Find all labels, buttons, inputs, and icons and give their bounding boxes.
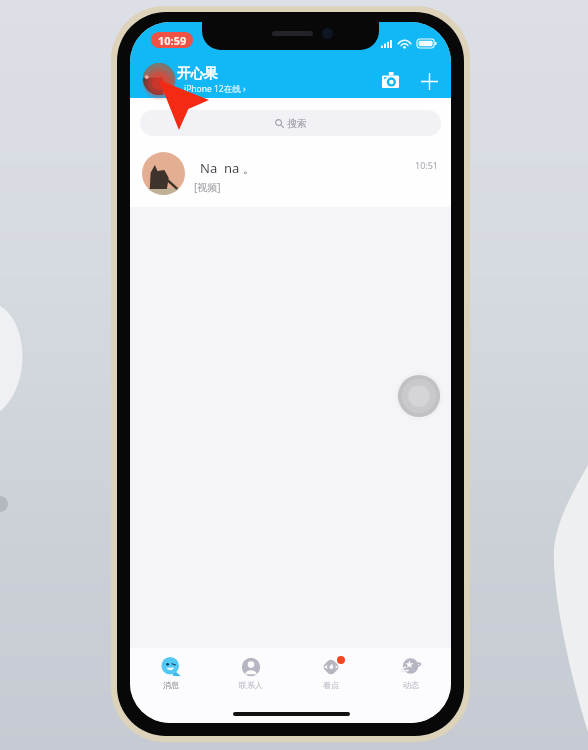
staticText: 动态 xyxy=(403,680,419,690)
staticText: 10:51 xyxy=(415,159,439,171)
button[interactable]: Camera xyxy=(376,66,404,94)
staticText: 联系人 xyxy=(239,680,263,690)
button[interactable]: Add xyxy=(415,67,443,95)
button[interactable]: 搜索 xyxy=(140,110,441,136)
button[interactable]: 动态 xyxy=(371,648,451,696)
staticText: iPhone 12在线 › xyxy=(184,83,246,95)
staticText: 消息 xyxy=(163,680,179,690)
staticText: 看点 xyxy=(323,680,339,690)
button[interactable]: 联系人 xyxy=(211,648,291,696)
button[interactable]: Assistive touch xyxy=(395,372,443,420)
staticText: Na na 。 xyxy=(200,159,256,177)
staticText: [视频] xyxy=(194,180,221,194)
button[interactable]: 消息 xyxy=(130,648,211,696)
button[interactable]: Na na 。 xyxy=(130,140,451,207)
staticText: 10:59 xyxy=(158,33,187,48)
button[interactable]: 看点 xyxy=(291,648,371,696)
button[interactable]: Profile avatar xyxy=(143,63,175,95)
staticText: 搜索 xyxy=(287,117,307,130)
staticText: 开心果 xyxy=(177,65,218,82)
